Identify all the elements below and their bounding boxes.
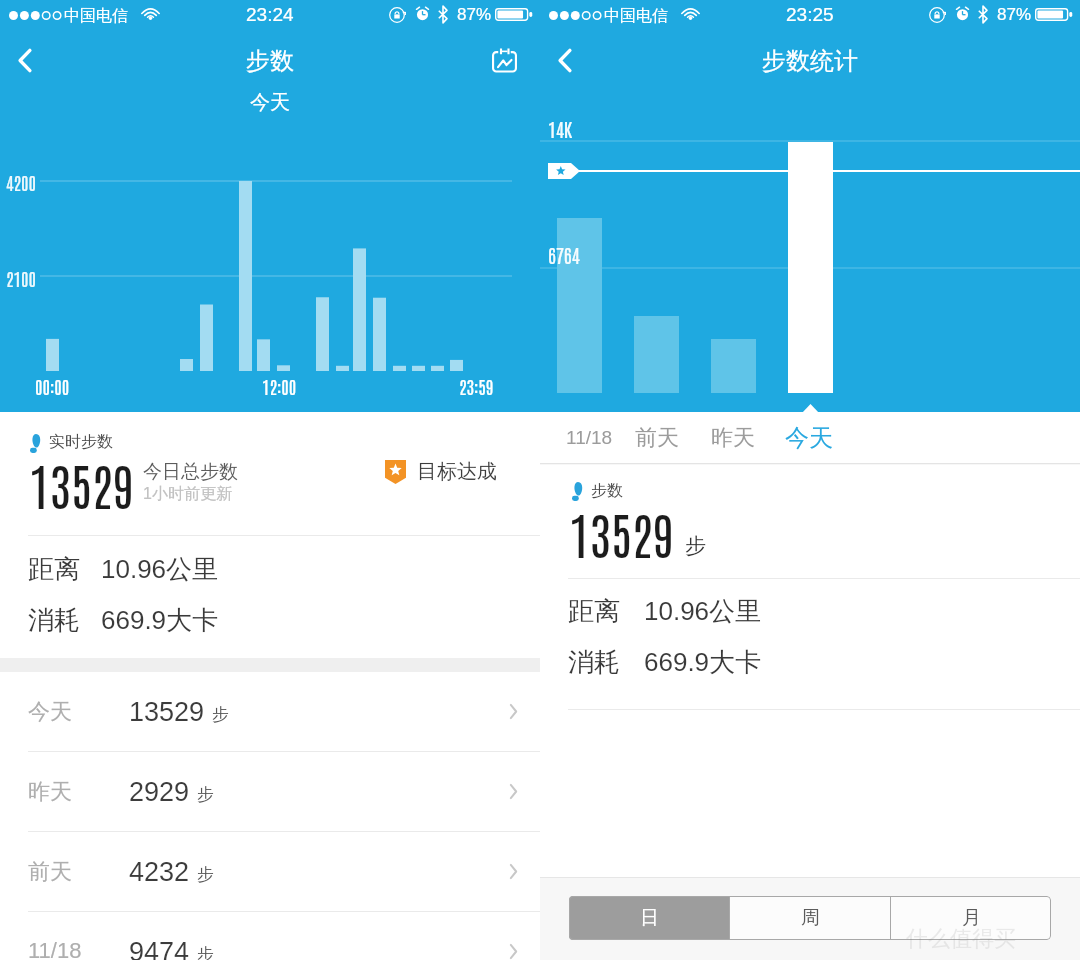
staticText: 9474: [129, 937, 190, 960]
staticText: 消耗: [568, 646, 620, 679]
button[interactable]: 11/18: [560, 415, 619, 460]
button[interactable]: 前天: [629, 415, 685, 460]
staticText: 4200: [6, 170, 37, 193]
staticText: 10.96公里: [644, 595, 762, 628]
staticText: 中国电信: [604, 6, 668, 26]
staticText: 昨天: [28, 778, 72, 806]
staticText: 日: [640, 906, 659, 930]
staticText: 今日总步数: [143, 460, 238, 484]
staticText: 23:25: [786, 4, 834, 25]
staticText: 步数统计: [762, 46, 858, 76]
staticText: 2100: [6, 266, 37, 289]
staticText: 11/18: [566, 427, 613, 448]
staticText: 步: [197, 864, 214, 885]
staticText: 23:24: [246, 4, 294, 25]
staticText: 14K: [548, 116, 573, 141]
staticText: 23:59: [459, 374, 494, 397]
staticText: 实时步数: [49, 432, 113, 452]
staticText: 13529: [29, 451, 134, 516]
staticText: 距离: [568, 595, 620, 628]
staticText: 步数: [591, 481, 623, 501]
staticText: 669.9大卡: [101, 604, 219, 637]
staticText: 87%: [457, 5, 492, 24]
staticText: 669.9大卡: [644, 646, 762, 679]
staticText: 步: [212, 704, 229, 725]
staticText: 周: [801, 906, 820, 930]
staticText: 步数: [246, 46, 294, 76]
button[interactable]: 月: [891, 896, 1051, 940]
button[interactable]: 日: [569, 896, 729, 940]
button[interactable]: 今天: [779, 415, 839, 460]
staticText: 距离: [28, 553, 80, 586]
staticText: 消耗: [28, 604, 80, 637]
staticText: 昨天: [711, 424, 755, 452]
staticText: 4232: [129, 857, 190, 887]
staticText: 前天: [28, 858, 72, 886]
staticText: 13529: [129, 697, 205, 727]
staticText: 步: [685, 533, 706, 559]
button[interactable]: Back: [3, 41, 47, 79]
staticText: 87%: [997, 5, 1032, 24]
staticText: 12:00: [262, 374, 297, 397]
button[interactable]: 周: [730, 896, 890, 940]
staticText: 00:00: [35, 374, 70, 397]
staticText: 步: [197, 784, 214, 805]
staticText: 今天: [785, 423, 833, 453]
button[interactable]: 昨天: [705, 415, 761, 460]
staticText: 前天: [635, 424, 679, 452]
button[interactable]: 前天: [0, 832, 540, 912]
staticText: 月: [962, 906, 981, 930]
button[interactable]: Back: [543, 41, 587, 79]
staticText: 13529: [569, 500, 674, 565]
staticText: 1小时前更新: [143, 484, 232, 504]
staticText: 2929: [129, 777, 190, 807]
staticText: 10.96公里: [101, 553, 219, 586]
staticText: 今天: [250, 90, 290, 115]
staticText: 什么值得买: [906, 925, 1016, 953]
staticText: 11/18: [28, 938, 82, 960]
staticText: 中国电信: [64, 6, 128, 26]
staticText: 步: [197, 944, 214, 960]
staticText: 今天: [28, 698, 72, 726]
button[interactable]: 目标达成: [385, 459, 497, 484]
staticText: 6764: [548, 242, 580, 267]
button[interactable]: 昨天: [0, 752, 540, 832]
button[interactable]: Statistics: [481, 41, 527, 79]
button[interactable]: 今天: [0, 672, 540, 752]
button[interactable]: 11/18: [0, 912, 540, 960]
staticText: 目标达成: [417, 459, 497, 484]
